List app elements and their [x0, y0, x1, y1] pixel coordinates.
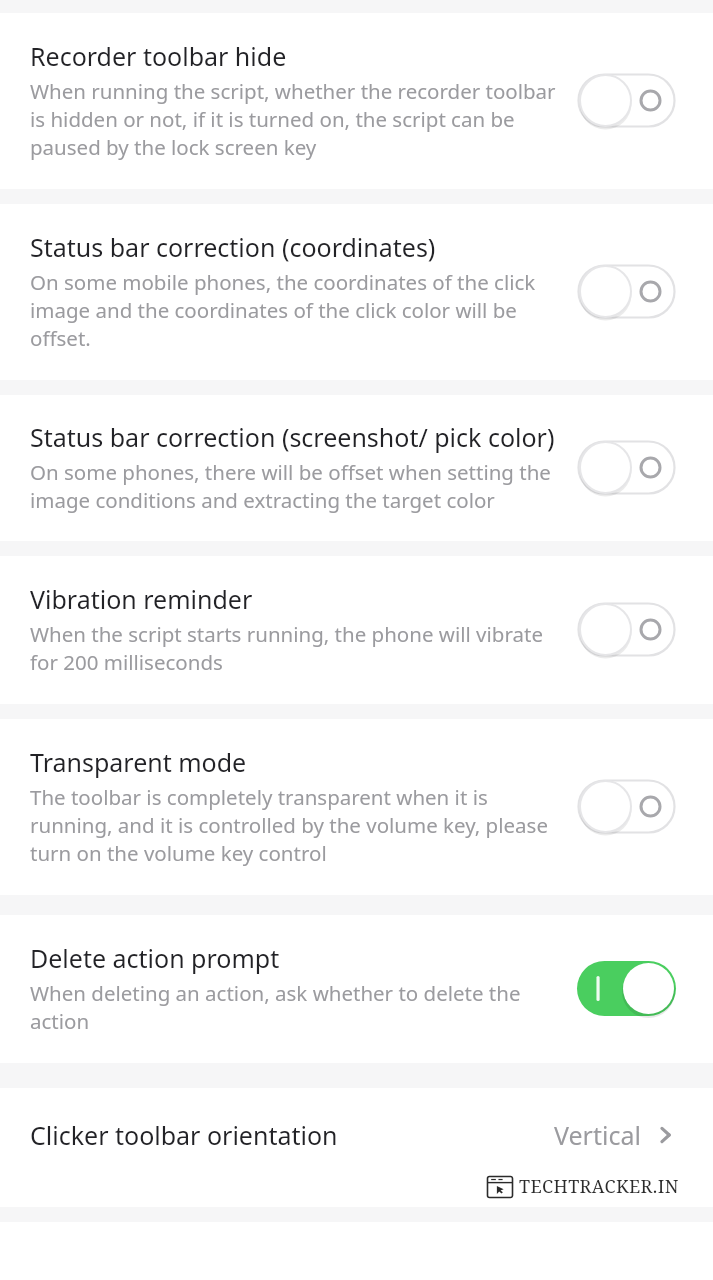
- staticText: The toolbar is completely transparent wh…: [30, 783, 559, 867]
- button[interactable]: Toggle off: [577, 440, 676, 495]
- button[interactable]: Toggle on: [577, 961, 676, 1016]
- button[interactable]: Delete action prompt: [0, 915, 713, 1063]
- staticText: When the script starts running, the phon…: [30, 620, 559, 676]
- staticText: When deleting an action, ask whether to …: [30, 979, 559, 1035]
- button[interactable]: Clicker toolbar orientation: [0, 1088, 713, 1160]
- staticText: When running the script, whether the rec…: [30, 77, 559, 161]
- button[interactable]: Status bar correction (screenshot/ pick …: [0, 395, 713, 541]
- staticText: Status bar correction (coordinates): [30, 230, 436, 264]
- staticText: Recorder toolbar hide: [30, 39, 287, 73]
- button[interactable]: Toggle off: [577, 602, 676, 657]
- button[interactable]: Vibration reminder: [0, 556, 713, 704]
- staticText: Vibration reminder: [30, 582, 253, 616]
- staticText: Status bar correction (screenshot/ pick …: [30, 420, 555, 454]
- staticText: Transparent mode: [30, 745, 247, 779]
- button[interactable]: Toggle off: [577, 779, 676, 834]
- staticText: Delete action prompt: [30, 941, 280, 975]
- staticText: TECHTRACKER.IN: [519, 1174, 679, 1199]
- button[interactable]: Toggle off: [577, 73, 676, 128]
- staticText: Clicker toolbar orientation: [30, 1118, 554, 1152]
- staticText: Vertical: [554, 1118, 641, 1152]
- button[interactable]: Transparent mode: [0, 719, 713, 895]
- staticText: On some mobile phones, the coordinates o…: [30, 268, 559, 352]
- button[interactable]: Status bar correction (coordinates): [0, 204, 713, 380]
- staticText: On some phones, there will be offset whe…: [30, 458, 559, 514]
- button[interactable]: Recorder toolbar hide: [0, 13, 713, 189]
- button[interactable]: Toggle off: [577, 264, 676, 319]
